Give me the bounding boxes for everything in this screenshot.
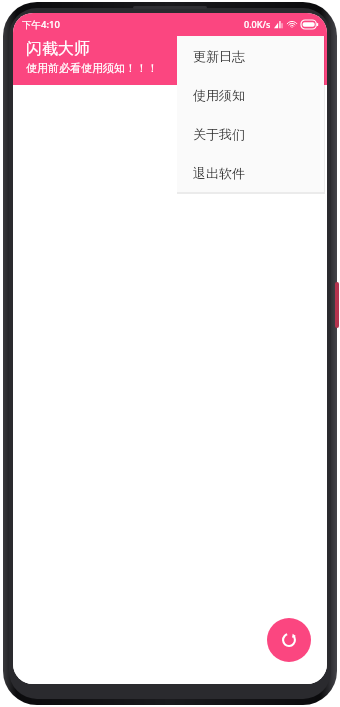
staticText: 更新日志 bbox=[193, 48, 245, 64]
staticText: 使用前必看使用须知！！！ bbox=[26, 61, 158, 75]
button[interactable]: 使用须知 bbox=[177, 75, 324, 114]
staticText: 下午4:10 bbox=[22, 18, 60, 31]
button[interactable]: 关于我们 bbox=[177, 114, 324, 153]
button[interactable]: 退出软件 bbox=[177, 153, 324, 192]
button[interactable]: 刷新 bbox=[267, 618, 311, 662]
button[interactable]: 更新日志 bbox=[177, 36, 324, 75]
staticText: 0.0K/s bbox=[244, 18, 271, 30]
staticText: 闪截大师 bbox=[26, 39, 90, 59]
staticText: 退出软件 bbox=[193, 165, 245, 181]
staticText: 使用须知 bbox=[193, 87, 245, 103]
staticText: 关于我们 bbox=[193, 126, 245, 142]
